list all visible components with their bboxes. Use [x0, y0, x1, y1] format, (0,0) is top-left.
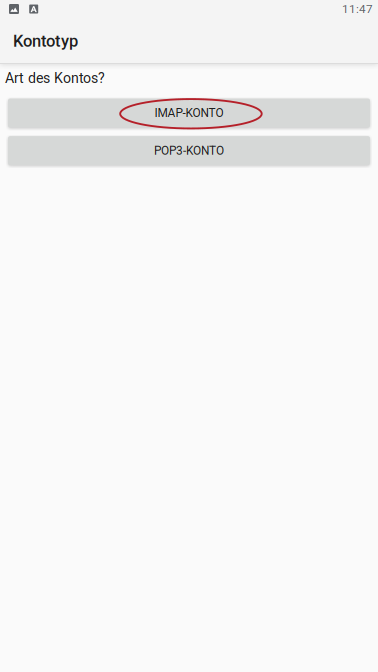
staticText: POP3-KONTO [154, 144, 224, 158]
button[interactable]: POP3-KONTO [8, 136, 370, 165]
staticText: 11:47 [342, 2, 373, 16]
staticText: IMAP-KONTO [154, 106, 223, 120]
staticText: Art des Kontos? [5, 70, 105, 87]
staticText: Kontotyp [13, 31, 78, 51]
button[interactable]: IMAP-KONTO [8, 99, 370, 128]
